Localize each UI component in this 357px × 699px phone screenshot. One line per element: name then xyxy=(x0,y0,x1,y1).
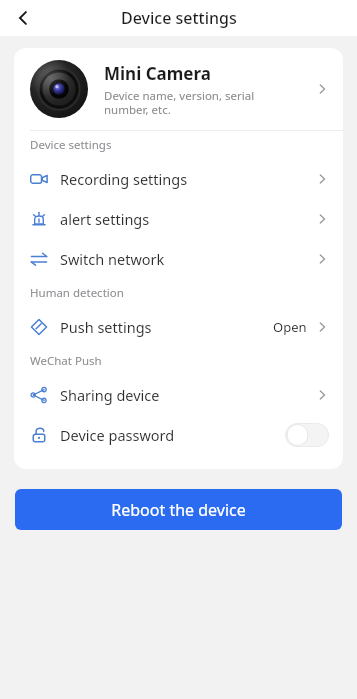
button[interactable]: Back xyxy=(6,1,40,35)
button[interactable]: alert settings xyxy=(14,199,343,239)
staticText: WeChat Push xyxy=(30,353,102,369)
button[interactable]: Device password xyxy=(14,415,343,455)
button[interactable]: Recording settings xyxy=(14,159,343,199)
staticText: Mini Camera xyxy=(104,62,211,85)
staticText: Human detection xyxy=(30,285,124,301)
staticText: alert settings xyxy=(60,209,315,229)
staticText: Device password xyxy=(60,425,285,445)
staticText: Push settings xyxy=(60,317,273,337)
button[interactable]: Push settings xyxy=(14,307,343,347)
button[interactable]: Sharing device xyxy=(14,375,343,415)
button[interactable]: Reboot the device xyxy=(15,489,342,530)
staticText: Recording settings xyxy=(60,169,315,189)
staticText: Open xyxy=(273,318,307,336)
button[interactable]: Mini Camera xyxy=(14,48,343,130)
staticText: Sharing device xyxy=(60,385,315,405)
staticText: Device settings xyxy=(30,137,112,153)
staticText: Device name, version, serial number, etc… xyxy=(104,88,255,117)
staticText: Switch network xyxy=(60,249,315,269)
staticText: Reboot the device xyxy=(111,499,246,521)
staticText: Device settings xyxy=(121,7,237,29)
button[interactable]: Switch network xyxy=(14,239,343,279)
button[interactable]: Device password toggle xyxy=(285,423,329,447)
